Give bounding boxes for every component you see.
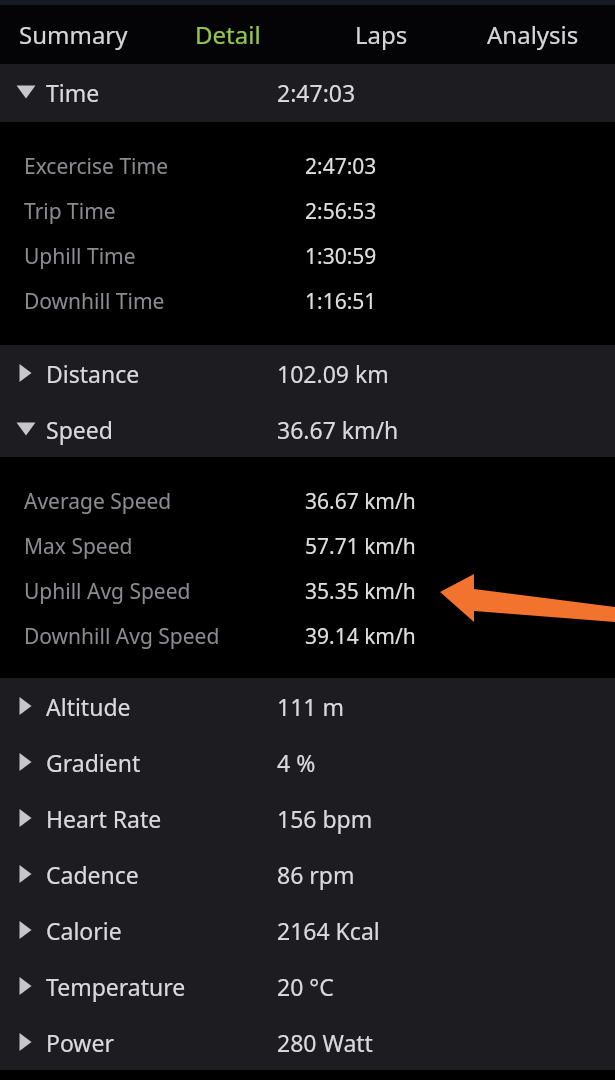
staticText: 57.71 km/h: [305, 532, 416, 561]
button[interactable]: Uphill Avg Speed: [0, 569, 615, 614]
staticText: 36.67 km/h: [277, 414, 399, 445]
staticText: 2:47:03: [305, 152, 377, 181]
staticText: 280 Watt: [277, 1027, 373, 1058]
staticText: 35.35 km/h: [305, 577, 416, 606]
button[interactable]: Downhill Avg Speed: [0, 614, 615, 659]
staticText: 2164 Kcal: [277, 915, 380, 946]
button[interactable]: Speed 36.67 km/h: [0, 401, 615, 457]
staticText: Gradient: [46, 747, 141, 778]
button[interactable]: Heart Rate 156 bpm: [0, 790, 615, 846]
staticText: Speed: [46, 414, 113, 445]
staticText: 86 rpm: [277, 859, 355, 890]
staticText: Downhill Avg Speed: [24, 622, 220, 651]
staticText: Calorie: [46, 915, 122, 946]
button[interactable]: Downhill Time: [0, 279, 615, 324]
staticText: Distance: [46, 358, 140, 389]
staticText: Trip Time: [24, 197, 116, 226]
staticText: Downhill Time: [24, 287, 165, 316]
staticText: 156 bpm: [277, 803, 373, 834]
button[interactable]: Calorie 2164 Kcal: [0, 902, 615, 958]
staticText: 4 %: [277, 747, 316, 778]
staticText: Heart Rate: [46, 803, 162, 834]
staticText: Excercise Time: [24, 152, 168, 181]
button[interactable]: Detail: [195, 18, 261, 51]
staticText: 102.09 km: [277, 358, 389, 389]
button[interactable]: Laps: [355, 18, 408, 51]
staticText: Temperature: [46, 971, 186, 1002]
staticText: 111 m: [277, 691, 344, 722]
button[interactable]: Distance 102.09 km: [0, 345, 615, 401]
button[interactable]: Cadence 86 rpm: [0, 846, 615, 902]
staticText: Altitude: [46, 691, 131, 722]
staticText: 1:16:51: [305, 287, 377, 316]
staticText: Max Speed: [24, 532, 133, 561]
staticText: 2:47:03: [277, 77, 356, 108]
staticText: Time: [46, 77, 100, 108]
button[interactable]: Uphill Time: [0, 234, 615, 279]
button[interactable]: Excercise Time: [0, 144, 615, 189]
button[interactable]: Time 2:47:03: [0, 64, 615, 120]
button[interactable]: Analysis: [487, 18, 579, 51]
button[interactable]: Trip Time: [0, 189, 615, 234]
staticText: 20 °C: [277, 971, 334, 1002]
staticText: Average Speed: [24, 487, 172, 516]
staticText: 39.14 km/h: [305, 622, 416, 651]
staticText: 2:56:53: [305, 197, 377, 226]
button[interactable]: Gradient 4 %: [0, 734, 615, 790]
staticText: 1:30:59: [305, 242, 377, 271]
button[interactable]: Average Speed: [0, 479, 615, 524]
staticText: Power: [46, 1027, 114, 1058]
button[interactable]: Altitude 111 m: [0, 678, 615, 734]
staticText: Cadence: [46, 859, 139, 890]
staticText: Uphill Avg Speed: [24, 577, 191, 606]
button[interactable]: Max Speed: [0, 524, 615, 569]
staticText: Uphill Time: [24, 242, 136, 271]
button[interactable]: Power 280 Watt: [0, 1014, 615, 1070]
button[interactable]: Summary: [19, 18, 128, 51]
button[interactable]: Temperature 20 °C: [0, 958, 615, 1014]
staticText: 36.67 km/h: [305, 487, 416, 516]
